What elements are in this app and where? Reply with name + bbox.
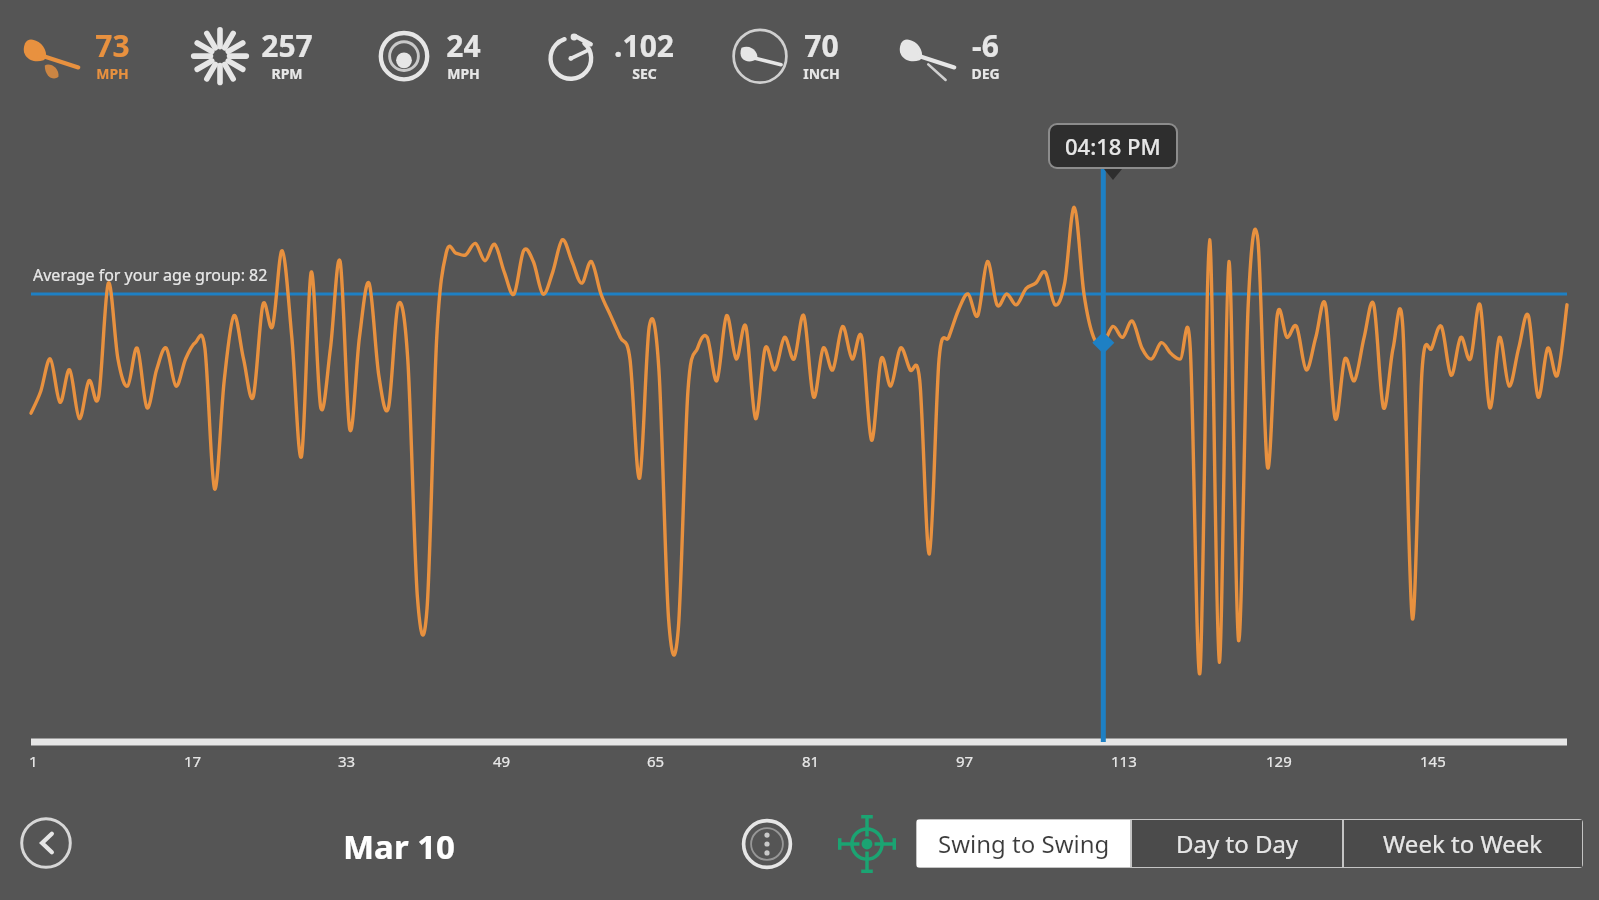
staticText: 113: [1111, 751, 1137, 771]
button[interactable]: Spin rate: [188, 25, 317, 85]
staticText: 1: [29, 751, 38, 771]
staticText: Week to Week: [1383, 827, 1543, 860]
staticText: 33: [338, 751, 356, 771]
button[interactable]: Center crosshair: [838, 815, 896, 873]
staticText: 65: [647, 751, 665, 771]
staticText: 24: [446, 25, 481, 66]
staticText: INCH: [803, 64, 840, 83]
button[interactable]: More options: [741, 818, 793, 870]
staticText: Swing to Swing: [938, 827, 1110, 860]
button[interactable]: Swing to Swing: [917, 820, 1130, 867]
button[interactable]: Attack angle: [892, 25, 1004, 85]
staticText: Day to Day: [1176, 827, 1299, 860]
button[interactable]: Mar 10: [337, 818, 461, 875]
button[interactable]: Ball speed: [371, 25, 485, 85]
staticText: MPH: [447, 64, 480, 83]
staticText: 81: [802, 751, 820, 771]
staticText: 145: [1420, 751, 1446, 771]
staticText: RPM: [271, 64, 303, 83]
staticText: .102: [614, 25, 674, 66]
staticText: SEC: [632, 64, 657, 83]
staticText: 49: [493, 751, 511, 771]
staticText: 129: [1266, 751, 1292, 771]
button[interactable]: Week to Week: [1344, 820, 1582, 867]
button[interactable]: Club head speed: [16, 25, 134, 85]
staticText: 17: [184, 751, 202, 771]
button[interactable]: Swing length: [726, 25, 844, 85]
button[interactable]: Previous day: [19, 816, 73, 870]
button[interactable]: 04:18 PM: [1050, 125, 1176, 167]
button[interactable]: Day to Day: [1132, 820, 1342, 867]
staticText: 257: [261, 25, 313, 66]
staticText: -6: [972, 25, 999, 66]
staticText: MPH: [96, 64, 129, 83]
staticText: Average for your age group: 82: [33, 264, 268, 286]
staticText: DEG: [971, 64, 1000, 83]
staticText: 97: [956, 751, 974, 771]
staticText: Mar 10: [343, 824, 455, 869]
staticText: 73: [95, 25, 130, 66]
staticText: 70: [804, 25, 839, 66]
staticText: 04:18 PM: [1065, 131, 1161, 161]
button[interactable]: Tempo: [539, 25, 678, 85]
